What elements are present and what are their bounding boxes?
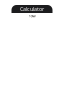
staticText: Calculator bbox=[20, 5, 44, 13]
staticText: row bbox=[28, 13, 35, 18]
